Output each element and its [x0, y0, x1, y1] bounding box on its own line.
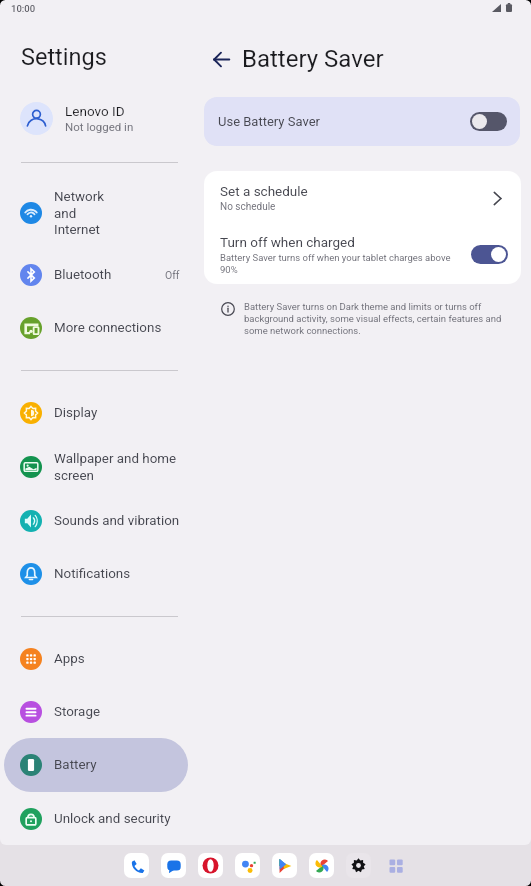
staticText: Wallpaper and home screen	[54, 451, 186, 483]
staticText: Battery Saver turns on Dark theme and li…	[244, 301, 521, 336]
staticText: Battery Saver turns off when your tablet…	[220, 252, 467, 275]
staticText: Battery	[54, 757, 186, 773]
other: Open	[488, 189, 507, 208]
button[interactable]: On	[471, 245, 508, 264]
button[interactable]: Assistant	[235, 853, 260, 878]
staticText: Lenovo ID	[65, 103, 125, 119]
button[interactable]: Turn off when charged	[204, 225, 521, 284]
button[interactable]: Apps	[4, 632, 194, 686]
staticText: Unlock and security	[54, 811, 186, 827]
button[interactable]: Phone	[124, 853, 149, 878]
staticText: Network and Internet	[54, 189, 186, 237]
button[interactable]: Wallpaper and home screen	[4, 440, 194, 494]
staticText: No schedule	[220, 201, 276, 213]
button[interactable]: Network and Internet	[4, 186, 194, 240]
button[interactable]: Display	[4, 386, 194, 440]
button[interactable]: Play Store	[272, 853, 297, 878]
button[interactable]: Back	[206, 44, 236, 74]
staticText: Use Battery Saver	[218, 114, 470, 129]
button[interactable]: Notifications	[4, 547, 194, 601]
button[interactable]: All apps	[383, 853, 408, 878]
button[interactable]: Settings	[346, 853, 371, 878]
staticText: Settings	[21, 43, 107, 71]
button[interactable]: Sounds and vibration	[4, 494, 194, 548]
staticText: Turn off when charged	[220, 234, 355, 250]
staticText: Notifications	[54, 566, 186, 582]
button[interactable]: Lenovo ID	[0, 96, 198, 140]
staticText: Not logged in	[65, 120, 134, 133]
button[interactable]: More connections	[4, 301, 194, 355]
button[interactable]: Bluetooth	[4, 248, 194, 302]
staticText: 10:00	[11, 3, 36, 14]
button[interactable]: Use Battery Saver	[204, 97, 520, 146]
staticText: Display	[54, 405, 186, 421]
staticText: More connections	[54, 320, 186, 336]
staticText: Off	[165, 269, 180, 281]
button[interactable]: Off	[470, 112, 507, 131]
button[interactable]: Storage	[4, 685, 194, 739]
staticText: Set a schedule	[220, 183, 308, 199]
button[interactable]: Unlock and security	[4, 792, 194, 845]
staticText: Apps	[54, 651, 186, 667]
button[interactable]: Messages	[161, 853, 186, 878]
button[interactable]: Opera	[198, 853, 223, 878]
staticText: Sounds and vibration	[54, 513, 186, 529]
button[interactable]: Set a schedule	[204, 171, 521, 225]
staticText: Storage	[54, 704, 186, 720]
button[interactable]: Battery	[4, 738, 194, 792]
staticText: Bluetooth	[54, 267, 165, 283]
staticText: Battery Saver	[242, 45, 384, 73]
button[interactable]: Photos	[309, 853, 334, 878]
